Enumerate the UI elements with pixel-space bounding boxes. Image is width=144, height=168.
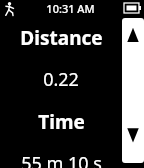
staticText: 55 m 10 s (21, 151, 102, 168)
other: Walking activity (4, 2, 15, 16)
button[interactable]: Scroll (122, 18, 144, 163)
button[interactable]: Distance (0, 18, 122, 168)
other: Battery (124, 3, 141, 13)
staticText: 10:31 AM (46, 1, 95, 16)
staticText: Time (38, 109, 85, 135)
staticText: Distance (20, 25, 103, 51)
staticText: 0.22 (43, 67, 79, 92)
